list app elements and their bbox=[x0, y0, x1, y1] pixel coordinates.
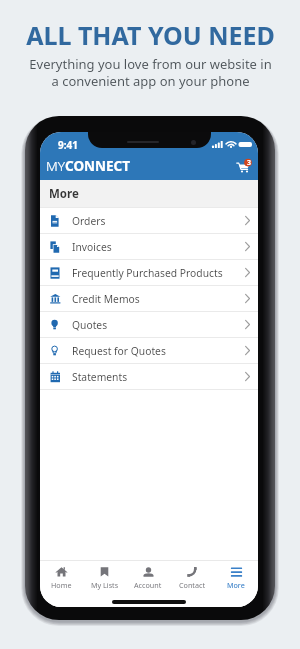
button[interactable]: My Lists bbox=[83, 566, 126, 590]
button[interactable]: Invoices bbox=[40, 234, 258, 260]
staticText: 3 bbox=[247, 158, 252, 168]
staticText: Home bbox=[51, 580, 72, 590]
button[interactable]: Frequently Purchased Products bbox=[40, 260, 258, 286]
staticText: Everything you love from our website in … bbox=[29, 55, 272, 90]
staticText: Frequently Purchased Products bbox=[72, 266, 223, 280]
staticText: Credit Memos bbox=[72, 292, 140, 306]
staticText: ALL THAT YOU NEED bbox=[26, 18, 275, 52]
button[interactable]: More bbox=[214, 566, 258, 590]
button[interactable]: Home bbox=[40, 566, 83, 590]
staticText: My Lists bbox=[91, 580, 119, 590]
button[interactable]: Quotes bbox=[40, 312, 258, 338]
button[interactable]: Account bbox=[126, 566, 170, 590]
button[interactable]: Shopping cart, 3 items bbox=[234, 158, 252, 175]
staticText: More bbox=[49, 186, 79, 202]
button[interactable]: Request for Quotes bbox=[40, 338, 258, 364]
staticText: Statements bbox=[72, 370, 128, 384]
button[interactable]: Statements bbox=[40, 364, 258, 390]
staticText: Quotes bbox=[72, 318, 108, 332]
staticText: Account bbox=[134, 580, 162, 590]
button[interactable]: Contact bbox=[170, 566, 214, 590]
button[interactable]: Orders bbox=[40, 208, 258, 234]
staticText: Orders bbox=[72, 214, 106, 228]
button[interactable]: Credit Memos bbox=[40, 286, 258, 312]
staticText: Contact bbox=[179, 580, 206, 590]
staticText: More bbox=[227, 580, 245, 590]
staticText: MY bbox=[46, 157, 65, 175]
staticText: Invoices bbox=[72, 240, 112, 254]
staticText: Request for Quotes bbox=[72, 344, 166, 358]
staticText: CONNECT bbox=[65, 157, 131, 175]
staticText: 9:41 bbox=[58, 138, 78, 152]
